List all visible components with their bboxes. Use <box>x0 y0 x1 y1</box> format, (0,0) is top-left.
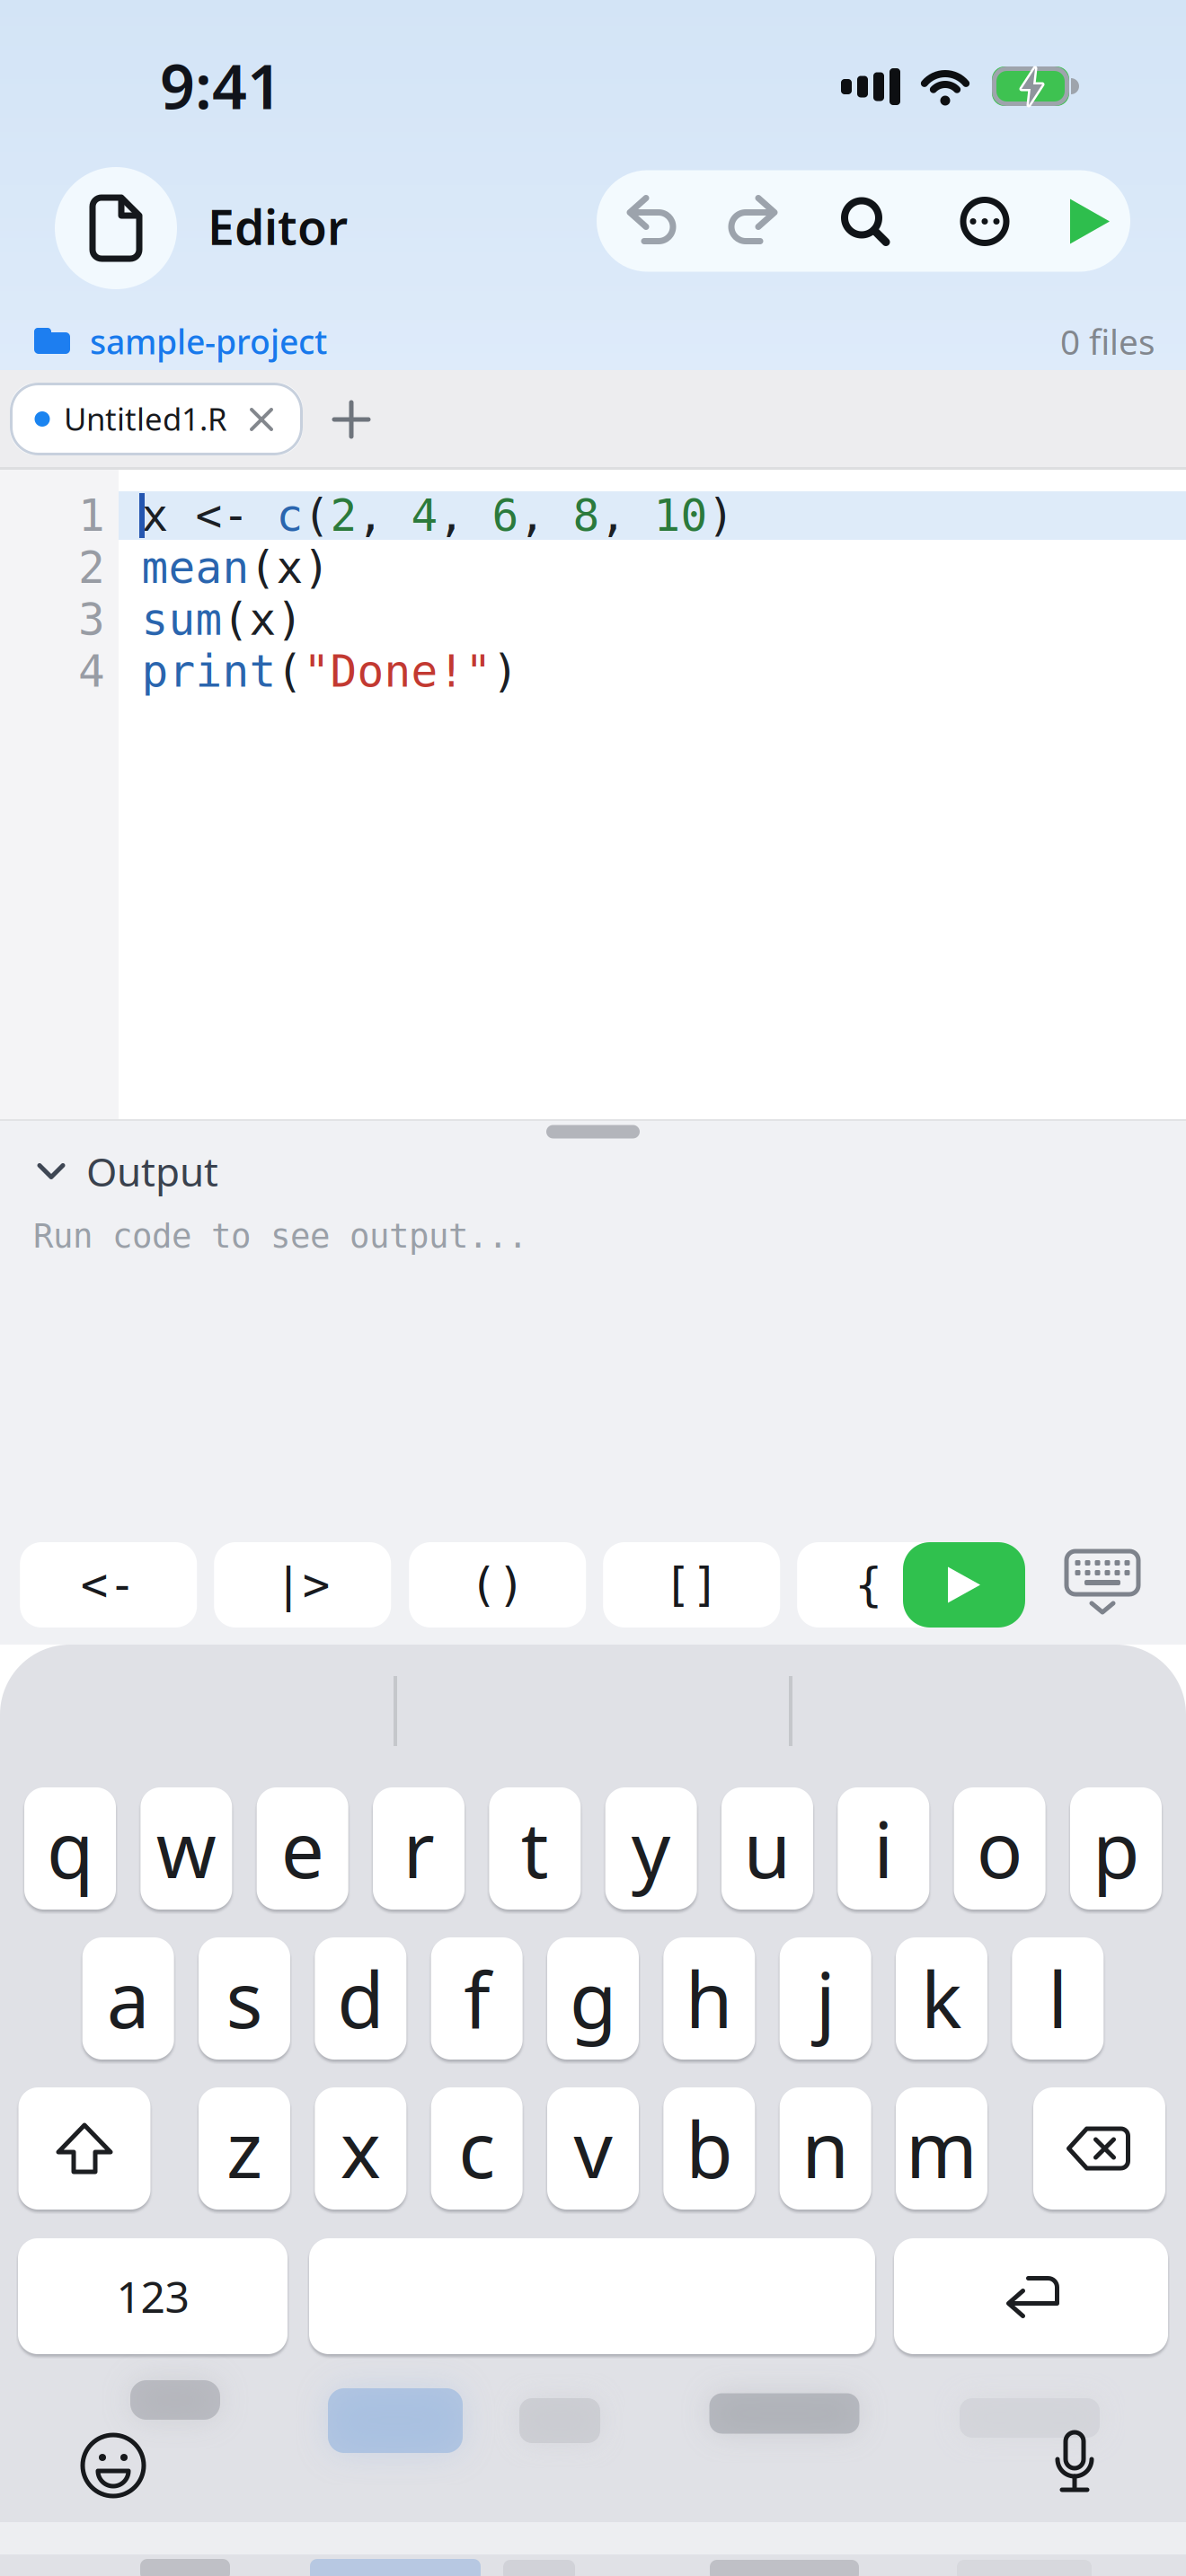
staticText: |> <box>275 1559 330 1611</box>
staticText: 6 <box>492 490 519 541</box>
button[interactable]: e <box>257 1787 348 1910</box>
button[interactable] <box>894 2238 1168 2354</box>
button[interactable]: () <box>409 1542 586 1628</box>
button[interactable]: p <box>1070 1787 1162 1910</box>
staticText: v <box>574 2098 612 2199</box>
staticText: <- <box>81 1559 136 1611</box>
staticText: ) <box>708 490 735 541</box>
staticText: d <box>337 1948 384 2049</box>
button[interactable]: Output <box>38 1145 218 1197</box>
button[interactable]: { <box>797 1542 974 1628</box>
button[interactable]: a <box>82 1937 174 2060</box>
button[interactable] <box>1068 196 1111 247</box>
button[interactable] <box>1065 1549 1140 1616</box>
button[interactable] <box>731 196 782 247</box>
button[interactable]: g <box>547 1937 639 2060</box>
button[interactable]: s <box>199 1937 290 2060</box>
button[interactable] <box>623 196 673 247</box>
staticText: 3 <box>78 594 105 645</box>
staticText: 10 <box>654 490 708 541</box>
staticText: q <box>47 1798 93 1899</box>
button[interactable]: sample-project <box>34 319 327 364</box>
button[interactable]: b <box>663 2087 755 2210</box>
button[interactable]: 123 <box>18 2238 288 2354</box>
button[interactable]: l <box>1012 1937 1104 2060</box>
staticText: n <box>802 2098 849 2199</box>
staticText: , <box>600 490 654 541</box>
button[interactable]: z <box>199 2087 290 2210</box>
staticText: t <box>521 1798 549 1899</box>
button[interactable]: y <box>605 1787 697 1910</box>
button[interactable] <box>309 2238 875 2354</box>
staticText: r <box>403 1798 434 1899</box>
button[interactable]: f <box>431 1937 523 2060</box>
button[interactable]: c <box>431 2087 523 2210</box>
staticText: m <box>906 2098 978 2199</box>
button[interactable] <box>55 167 177 289</box>
staticText: x <- <box>142 490 276 541</box>
staticText: Output <box>86 1145 218 1197</box>
staticText: Untitled1.R <box>64 398 227 439</box>
staticText: h <box>685 1948 733 2049</box>
staticText: (x) <box>222 594 303 645</box>
staticText: Editor <box>208 195 348 258</box>
staticText: c <box>276 490 303 541</box>
button[interactable]: |> <box>214 1542 391 1628</box>
staticText: g <box>570 1948 616 2049</box>
button[interactable]: [] <box>603 1542 780 1628</box>
staticText: s <box>226 1948 263 2049</box>
button[interactable]: q <box>24 1787 116 1910</box>
button[interactable]: t <box>489 1787 581 1910</box>
button[interactable]: o <box>954 1787 1046 1910</box>
staticText: w <box>156 1798 216 1899</box>
button[interactable] <box>960 196 1010 247</box>
staticText: f <box>464 1948 490 2049</box>
staticText: 4 <box>411 490 438 541</box>
staticText: sum <box>142 594 222 645</box>
button[interactable]: j <box>780 1937 871 2060</box>
staticText: b <box>686 2098 733 2199</box>
button[interactable]: r <box>373 1787 465 1910</box>
staticText: { <box>855 1559 883 1611</box>
staticText: y <box>631 1798 671 1899</box>
staticText: c <box>458 2098 495 2199</box>
staticText: 4 <box>78 646 105 696</box>
button[interactable]: m <box>896 2087 987 2210</box>
button[interactable]: k <box>896 1937 987 2060</box>
staticText: l <box>1048 1948 1068 2049</box>
staticText: Run code to see output... <box>33 1217 527 1255</box>
staticText: , <box>357 490 411 541</box>
button[interactable]: d <box>315 1937 406 2060</box>
staticText: u <box>743 1798 791 1899</box>
staticText: z <box>226 2098 262 2199</box>
button[interactable]: u <box>721 1787 813 1910</box>
staticText: , <box>519 490 573 541</box>
staticText: 2 <box>330 490 357 541</box>
button[interactable]: h <box>663 1937 755 2060</box>
button[interactable]: n <box>780 2087 871 2210</box>
button[interactable] <box>1049 2429 1100 2499</box>
button[interactable]: i <box>838 1787 929 1910</box>
staticText: k <box>921 1948 962 2049</box>
button[interactable]: x <box>315 2087 406 2210</box>
staticText: 9:41 <box>160 45 282 126</box>
staticText: j <box>816 1948 835 2049</box>
button[interactable]: w <box>140 1787 232 1910</box>
staticText: ( <box>303 490 330 541</box>
staticText: p <box>1093 1798 1139 1899</box>
staticText: o <box>976 1798 1023 1899</box>
button[interactable] <box>1033 2087 1165 2210</box>
button[interactable]: v <box>547 2087 639 2210</box>
button[interactable] <box>903 1542 1025 1628</box>
button[interactable]: <- <box>20 1542 197 1628</box>
staticText: e <box>281 1798 324 1899</box>
staticText: 1 <box>78 490 105 541</box>
button[interactable] <box>332 401 370 438</box>
button[interactable] <box>79 2431 147 2500</box>
staticText: [] <box>664 1559 719 1611</box>
staticText: a <box>107 1948 150 2049</box>
staticText: x <box>340 2098 381 2199</box>
button[interactable] <box>18 2087 150 2210</box>
button[interactable] <box>840 196 890 247</box>
button[interactable]: Untitled1.R <box>10 383 303 455</box>
